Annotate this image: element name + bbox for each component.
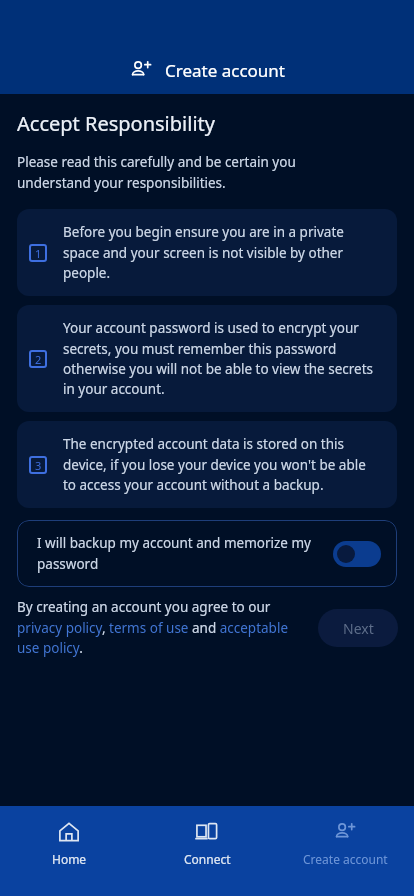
button[interactable]: 3 — [17, 421, 397, 508]
staticText: I will backup my account and memorize my… — [37, 534, 321, 573]
staticText: 3 — [35, 458, 42, 473]
staticText: Create account — [165, 59, 285, 82]
staticText: Create account — [303, 851, 388, 867]
button[interactable]: Home — [0, 806, 138, 896]
button[interactable]: 1 — [17, 209, 397, 296]
button[interactable]: Connect — [138, 806, 276, 896]
staticText: Please read this carefully and be certai… — [17, 153, 334, 192]
staticText: Before you begin ensure you are in a pri… — [63, 223, 381, 282]
staticText: Accept Responsibility — [17, 110, 215, 137]
staticText: Home — [52, 851, 87, 867]
staticText: The encrypted account data is stored on … — [63, 435, 381, 494]
staticText: Your account password is used to encrypt… — [63, 319, 381, 398]
staticText: Next — [343, 619, 374, 638]
button[interactable]: Create account — [276, 806, 414, 896]
button[interactable]: 2 — [17, 305, 397, 412]
staticText: 1 — [35, 246, 42, 261]
button[interactable]: Backup confirmation toggle — [333, 541, 381, 567]
staticText: Connect — [184, 851, 231, 867]
staticText: 2 — [35, 352, 42, 367]
button[interactable]: Next — [318, 609, 398, 647]
button[interactable]: By creating an account you agree to our … — [17, 598, 306, 657]
button[interactable]: I will backup my account and memorize my… — [17, 520, 397, 587]
